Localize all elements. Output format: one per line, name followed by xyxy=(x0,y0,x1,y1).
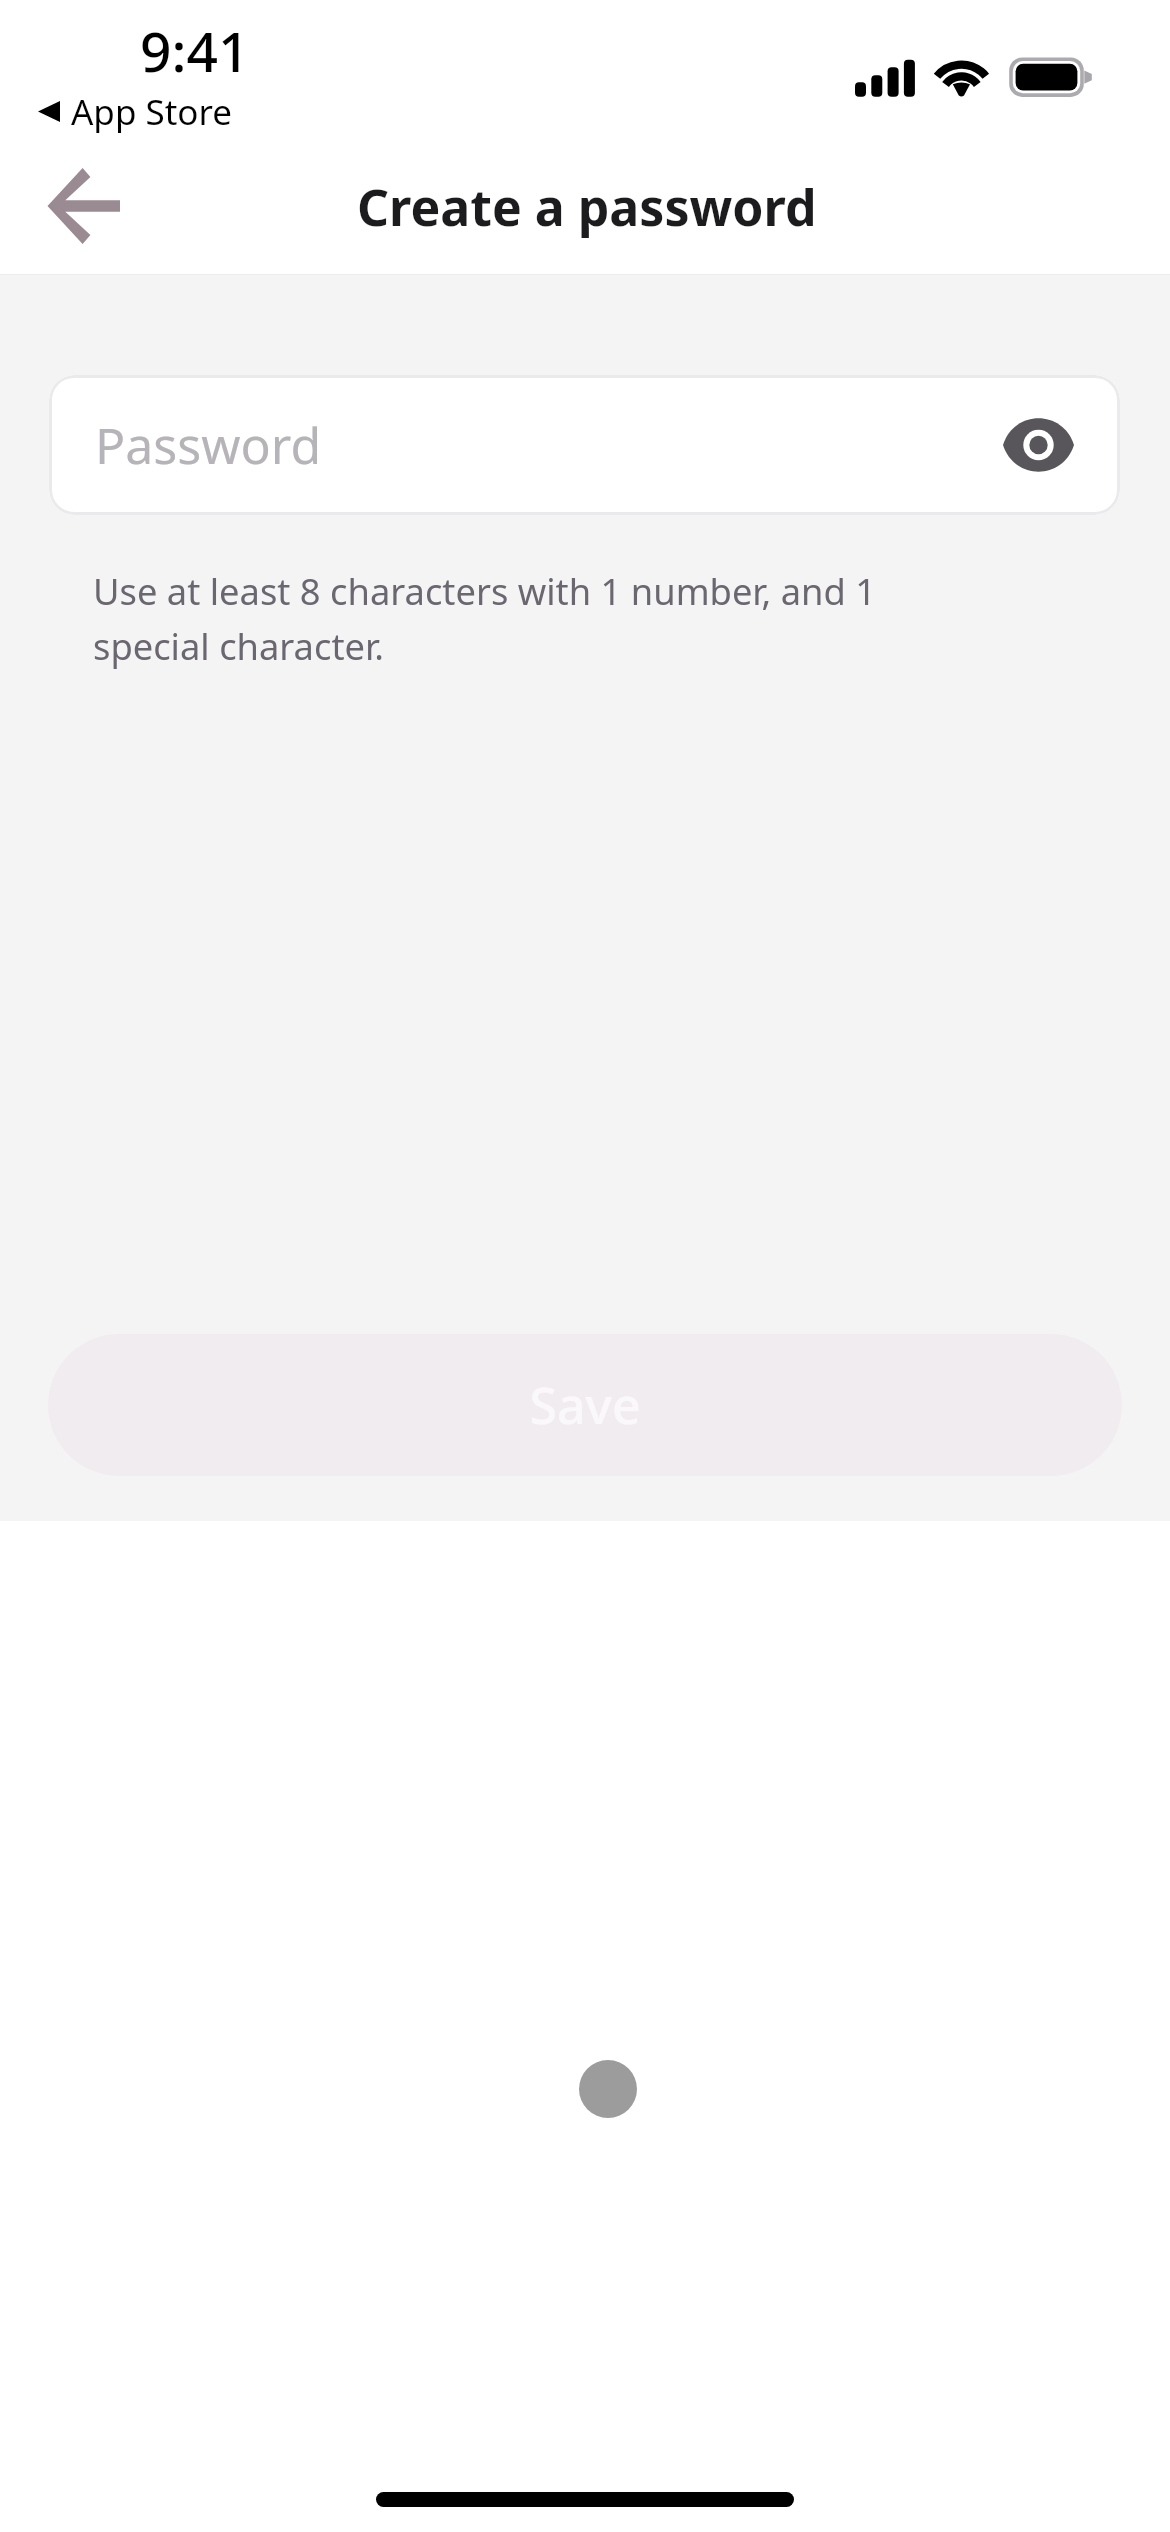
staticText: Password xyxy=(95,411,322,479)
staticText: 9:41 xyxy=(140,13,250,88)
staticText: Create a password xyxy=(357,173,817,241)
button[interactable]: Password xyxy=(49,375,1120,515)
button[interactable]: Show password xyxy=(993,400,1083,490)
button[interactable]: Back xyxy=(26,146,146,266)
staticText: Use at least 8 characters with 1 number,… xyxy=(93,566,921,671)
button[interactable]: App Store xyxy=(30,86,242,138)
staticText: App Store xyxy=(71,88,233,136)
staticText: Save xyxy=(529,1371,641,1439)
